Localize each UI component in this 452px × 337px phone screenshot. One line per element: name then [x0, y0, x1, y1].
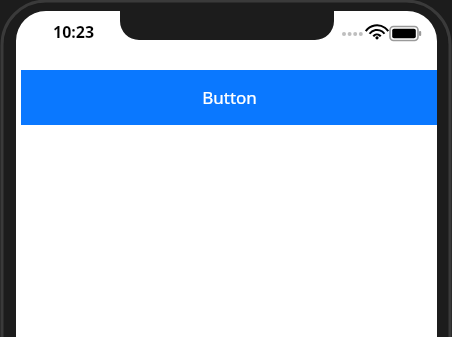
staticText: Button [202, 86, 257, 109]
button[interactable]: Button [21, 70, 437, 125]
staticText: 10:23 [53, 21, 95, 43]
